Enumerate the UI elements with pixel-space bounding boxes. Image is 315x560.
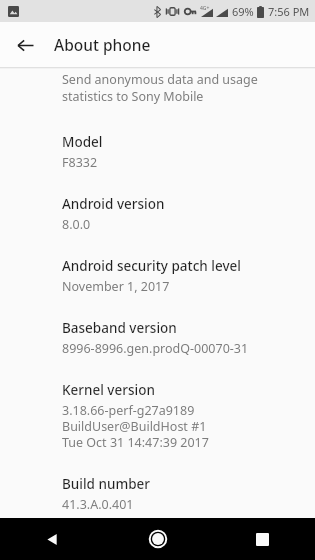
staticText: 41.3.A.0.401 xyxy=(62,496,134,513)
staticText: Kernel version xyxy=(62,381,155,399)
staticText: Android version xyxy=(62,195,165,213)
button[interactable]: Recent apps xyxy=(210,518,315,560)
button[interactable]: Android security patch level xyxy=(0,233,315,295)
staticText: 3.18.66-perf-g27a9189 BuildUser@BuildHos… xyxy=(62,402,209,451)
staticText: 4G+ xyxy=(200,5,210,12)
button[interactable]: Android version xyxy=(0,171,315,233)
staticText: Build number xyxy=(62,475,151,493)
button[interactable]: Navigate up xyxy=(7,27,43,63)
button[interactable]: Build number xyxy=(0,451,315,513)
staticText: About phone xyxy=(54,34,151,55)
staticText: 8996-8996.gen.prodQ-00070-31 xyxy=(62,340,249,357)
button[interactable]: Back xyxy=(0,518,105,560)
button[interactable]: Kernel version xyxy=(0,357,315,451)
staticText: 7:56 PM xyxy=(268,4,310,19)
staticText: 8.0.0 xyxy=(62,216,91,233)
staticText: Send anonymous data and usage statistics… xyxy=(62,71,299,105)
staticText: Android security patch level xyxy=(62,257,241,275)
staticText: 69% xyxy=(232,4,254,19)
button[interactable]: Model xyxy=(0,115,315,171)
button[interactable]: Baseband version xyxy=(0,295,315,357)
staticText: Baseband version xyxy=(62,319,177,337)
staticText: November 1, 2017 xyxy=(62,278,170,295)
staticText: Model xyxy=(62,133,103,151)
button[interactable]: Home xyxy=(105,518,210,560)
button[interactable]: Send anonymous data and usage statistics… xyxy=(0,69,315,115)
staticText: F8332 xyxy=(62,154,98,171)
